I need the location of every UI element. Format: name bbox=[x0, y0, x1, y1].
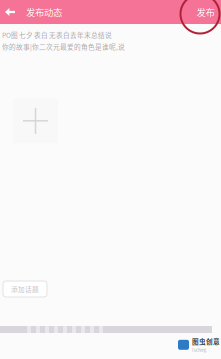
staticText: 发布动态 bbox=[26, 5, 62, 19]
staticText: PO图 七夕 表白 无表白去年末总结说 bbox=[2, 30, 112, 40]
staticText: 图虫创意 bbox=[192, 337, 220, 346]
staticText: 发布 bbox=[196, 5, 214, 19]
staticText: 添加话题 bbox=[11, 284, 39, 294]
staticText: 你的故事|你二次元最爱的角色是谁呢,说 bbox=[2, 42, 125, 51]
button[interactable]: 添加话题 bbox=[3, 281, 47, 297]
button[interactable]: Add photo bbox=[13, 98, 58, 143]
button[interactable]: Back bbox=[0, 0, 26, 24]
staticText: tuchong bbox=[192, 347, 206, 353]
button[interactable]: 发布动态 bbox=[26, 0, 62, 24]
button[interactable]: 发布 bbox=[190, 0, 221, 24]
